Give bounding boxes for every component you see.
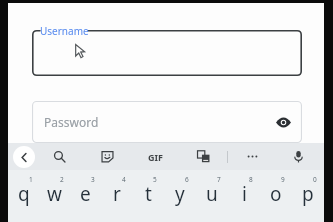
button[interactable]: 8 (228, 175, 260, 221)
staticText: i (242, 181, 247, 207)
staticText: t (145, 181, 152, 207)
staticText: 1 (29, 175, 33, 184)
button[interactable]: 0 (292, 175, 324, 221)
staticText: 4 (122, 175, 126, 184)
button[interactable]: Password (32, 101, 302, 143)
button[interactable]: 1 (8, 175, 39, 221)
button[interactable]: Back (13, 146, 35, 168)
staticText: 3 (91, 175, 95, 184)
staticText: p (302, 181, 314, 207)
staticText: GIF (148, 151, 163, 163)
staticText: w (47, 181, 62, 207)
button[interactable]: Translate (179, 143, 227, 170)
button[interactable]: Show password (272, 111, 294, 133)
staticText: Username (40, 24, 89, 38)
button[interactable]: More options (228, 143, 276, 170)
staticText: q (18, 181, 30, 207)
button[interactable]: 9 (260, 175, 292, 221)
button[interactable]: Search (35, 143, 83, 170)
staticText: r (113, 181, 121, 207)
staticText: o (270, 181, 282, 207)
button[interactable]: 7 (196, 175, 228, 221)
button[interactable]: Username (32, 30, 302, 76)
button[interactable]: Stickers (83, 143, 131, 170)
button[interactable]: 5 (132, 175, 164, 221)
button[interactable]: 6 (164, 175, 196, 221)
button[interactable]: 3 (70, 175, 101, 221)
staticText: 5 (153, 175, 157, 184)
staticText: y (175, 181, 185, 207)
button[interactable]: Voice input (276, 143, 320, 170)
staticText: 7 (217, 175, 221, 184)
staticText: e (80, 181, 91, 207)
staticText: 0 (313, 175, 317, 184)
staticText: 9 (281, 175, 285, 184)
staticText: 6 (185, 175, 189, 184)
staticText: Password (44, 114, 99, 130)
staticText: 2 (60, 175, 64, 184)
button[interactable]: GIF (131, 143, 179, 170)
button[interactable]: 4 (101, 175, 132, 221)
staticText: 8 (249, 175, 253, 184)
staticText: u (206, 181, 218, 207)
button[interactable]: 2 (39, 175, 70, 221)
